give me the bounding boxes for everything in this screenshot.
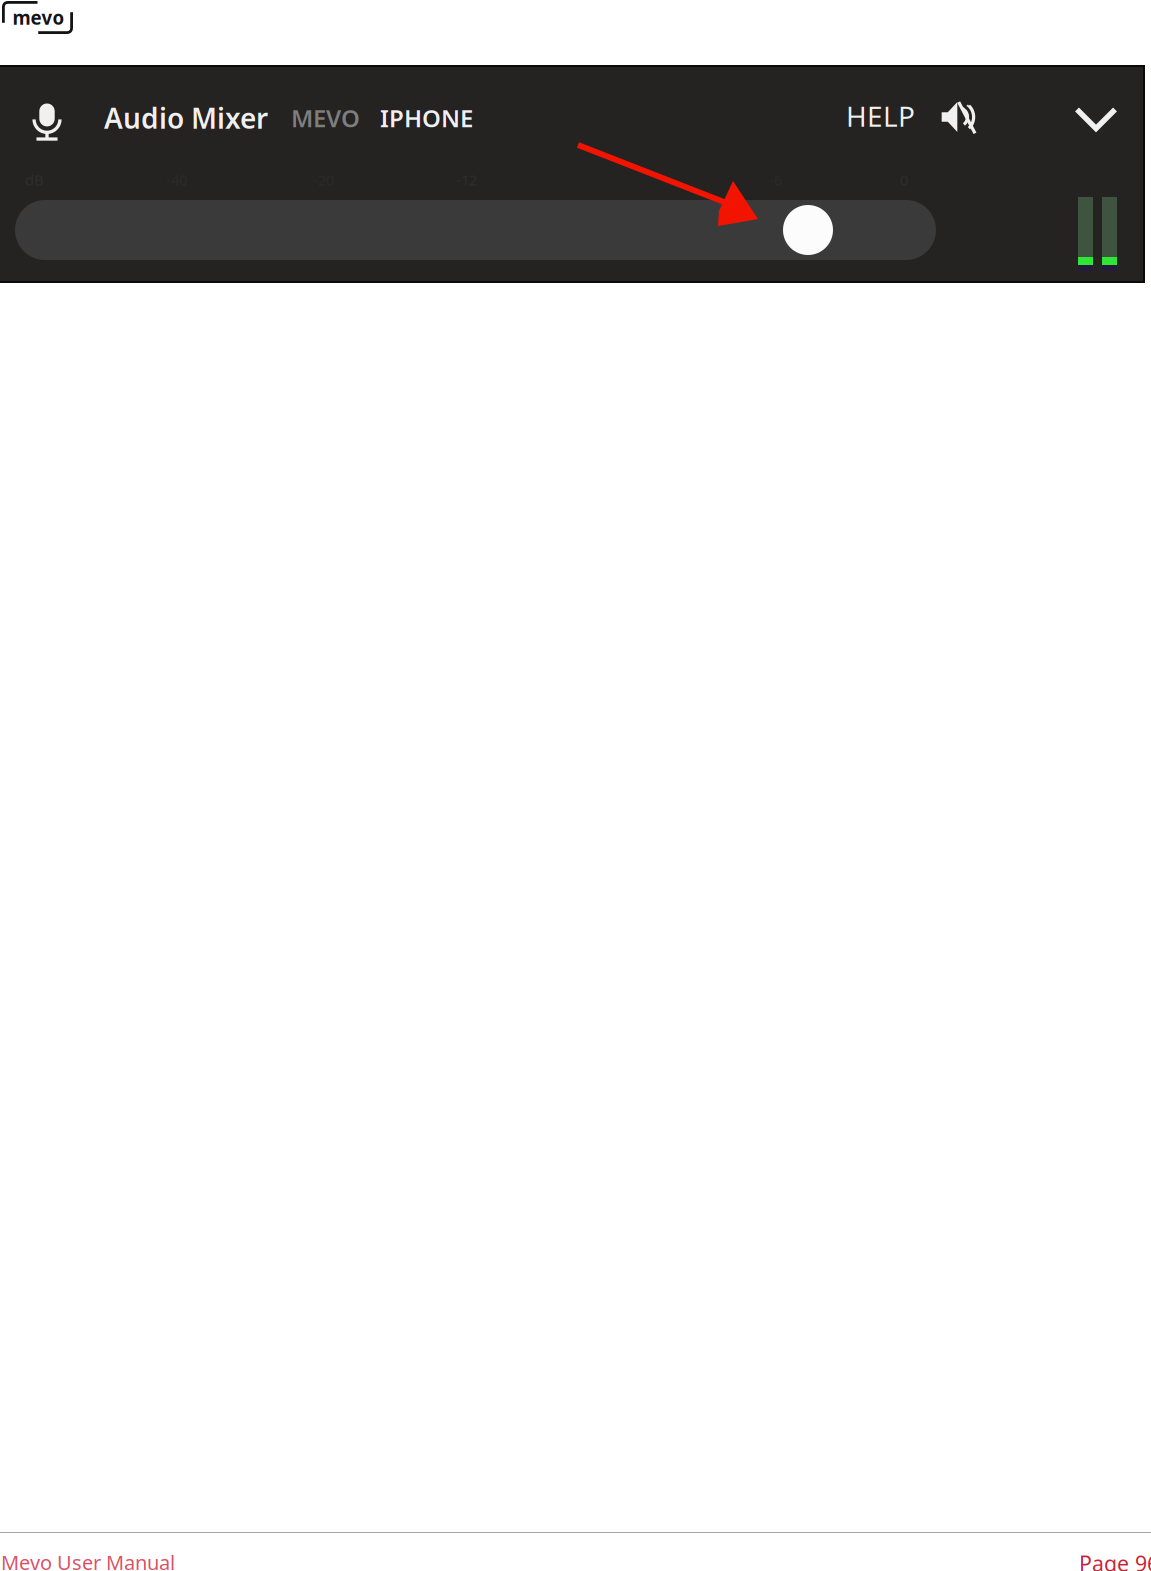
staticText: HELP xyxy=(846,97,915,135)
button[interactable]: Mute xyxy=(935,94,981,140)
button[interactable]: MEVO xyxy=(291,96,401,140)
button[interactable]: IPHONE xyxy=(380,96,520,140)
staticText: 0 xyxy=(900,170,908,189)
staticText: Audio Mixer xyxy=(104,99,268,137)
staticText: IPHONE xyxy=(380,102,473,134)
button[interactable]: Collapse audio mixer xyxy=(1061,96,1131,142)
staticText: dB xyxy=(25,170,44,189)
staticText: MEVO xyxy=(291,102,360,134)
staticText: Page 96 xyxy=(1079,1549,1151,1571)
button[interactable]: iPhone input volume xyxy=(15,200,936,260)
staticText: Mevo User Manual xyxy=(1,1549,175,1571)
button[interactable]: Microphone xyxy=(20,93,74,151)
button[interactable]: HELP xyxy=(846,93,966,139)
staticText: mevo xyxy=(12,5,64,30)
